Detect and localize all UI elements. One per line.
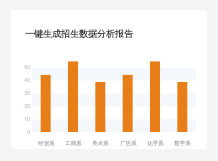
button[interactable]: 美术系 bbox=[86, 138, 114, 148]
button[interactable]: 数学系 bbox=[168, 138, 196, 148]
staticText: 工商系 bbox=[65, 140, 82, 147]
staticText: 一键生成招生数据分析报告 bbox=[25, 28, 133, 39]
staticText: 40 bbox=[19, 77, 30, 84]
button[interactable]: 经管系 bbox=[32, 138, 60, 148]
button[interactable]: 化学系 bbox=[141, 138, 169, 148]
button[interactable]: 一键生成招生数据分析报告 bbox=[11, 10, 207, 149]
button[interactable]: 广告系 bbox=[114, 138, 142, 148]
staticText: 广告系 bbox=[120, 140, 137, 147]
staticText: 50 bbox=[19, 64, 30, 71]
staticText: 美术系 bbox=[92, 140, 109, 147]
staticText: 化学系 bbox=[147, 140, 164, 147]
staticText: 10 bbox=[19, 116, 30, 123]
staticText: 30 bbox=[19, 90, 30, 97]
button[interactable]: 工商系 bbox=[59, 138, 87, 148]
staticText: 0 bbox=[19, 129, 30, 136]
staticText: 20 bbox=[19, 103, 30, 110]
staticText: 数学系 bbox=[174, 140, 191, 147]
staticText: 经管系 bbox=[38, 140, 55, 147]
